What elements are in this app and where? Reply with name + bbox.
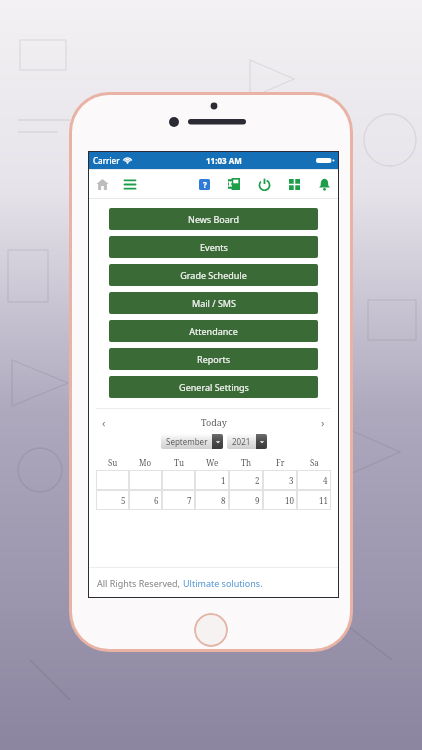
button[interactable] — [96, 470, 129, 490]
button[interactable]: 7 — [162, 490, 195, 510]
button[interactable] — [129, 470, 162, 490]
button[interactable]: Help — [189, 169, 219, 199]
button[interactable]: Previous month — [96, 414, 112, 430]
button[interactable]: 10 — [263, 490, 297, 510]
staticText: Fr — [276, 457, 285, 468]
staticText: Reports — [197, 353, 230, 365]
staticText: 2 — [255, 475, 260, 486]
button[interactable]: 4 — [297, 470, 331, 490]
staticText: News Board — [188, 213, 239, 225]
staticText: Ultimate solutions. — [183, 577, 263, 589]
staticText: Mo — [139, 457, 152, 468]
staticText: Today — [201, 416, 227, 428]
staticText: 11 — [319, 495, 328, 506]
staticText: Mail / SMS — [192, 297, 236, 309]
staticText: 10 — [285, 495, 294, 506]
staticText: 11:03 AM — [206, 155, 242, 166]
button[interactable]: Attendance — [109, 320, 318, 342]
button[interactable]: Menu — [116, 169, 144, 199]
button[interactable]: 8 — [195, 490, 229, 510]
staticText: 8 — [221, 495, 226, 506]
staticText: 5 — [121, 495, 126, 506]
staticText: 6 — [154, 495, 159, 506]
staticText: Events — [200, 241, 228, 253]
button[interactable]: Mail / SMS — [109, 292, 318, 314]
staticText: ? — [203, 179, 207, 190]
staticText: ‹ — [102, 415, 106, 430]
button[interactable]: 3 — [263, 470, 297, 490]
staticText: General Settings — [179, 381, 249, 393]
staticText: Tu — [174, 457, 184, 468]
staticText: 2021 — [232, 436, 251, 447]
button[interactable]: News Board — [109, 208, 318, 230]
staticText: Sa — [310, 457, 319, 468]
button[interactable]: Notifications — [309, 169, 339, 199]
staticText: Su — [108, 457, 118, 468]
staticText: 7 — [187, 495, 192, 506]
staticText: Th — [241, 457, 251, 468]
staticText: September — [166, 436, 208, 447]
button[interactable]: Documents — [219, 169, 249, 199]
button[interactable]: Events — [109, 236, 318, 258]
button[interactable]: 2021 — [227, 434, 267, 449]
button[interactable]: 2 — [229, 470, 263, 490]
staticText: Attendance — [189, 325, 238, 337]
staticText: 1 — [221, 475, 226, 486]
staticText: All Rights Reserved, — [97, 577, 183, 589]
button[interactable]: Next month — [315, 414, 331, 430]
button[interactable]: 5 — [96, 490, 129, 510]
staticText: We — [206, 457, 219, 468]
button[interactable] — [162, 470, 195, 490]
button[interactable]: Ultimate solutions. — [183, 577, 263, 589]
staticText: 4 — [323, 475, 328, 486]
other: Home button — [194, 613, 228, 647]
button[interactable]: 11 — [297, 490, 331, 510]
staticText: 3 — [289, 475, 294, 486]
staticText: › — [321, 415, 325, 430]
staticText: 9 — [255, 495, 260, 506]
button[interactable]: September — [161, 434, 223, 449]
button[interactable]: 9 — [229, 490, 263, 510]
button[interactable]: Grade Schedule — [109, 264, 318, 286]
button[interactable]: Power — [249, 169, 279, 199]
button[interactable]: Apps — [279, 169, 309, 199]
button[interactable]: General Settings — [109, 376, 318, 398]
button[interactable]: 6 — [129, 490, 162, 510]
button[interactable]: 1 — [195, 470, 229, 490]
staticText: Carrier — [93, 155, 120, 166]
button[interactable]: Reports — [109, 348, 318, 370]
staticText: Grade Schedule — [180, 269, 247, 281]
button[interactable]: Home — [88, 169, 116, 199]
